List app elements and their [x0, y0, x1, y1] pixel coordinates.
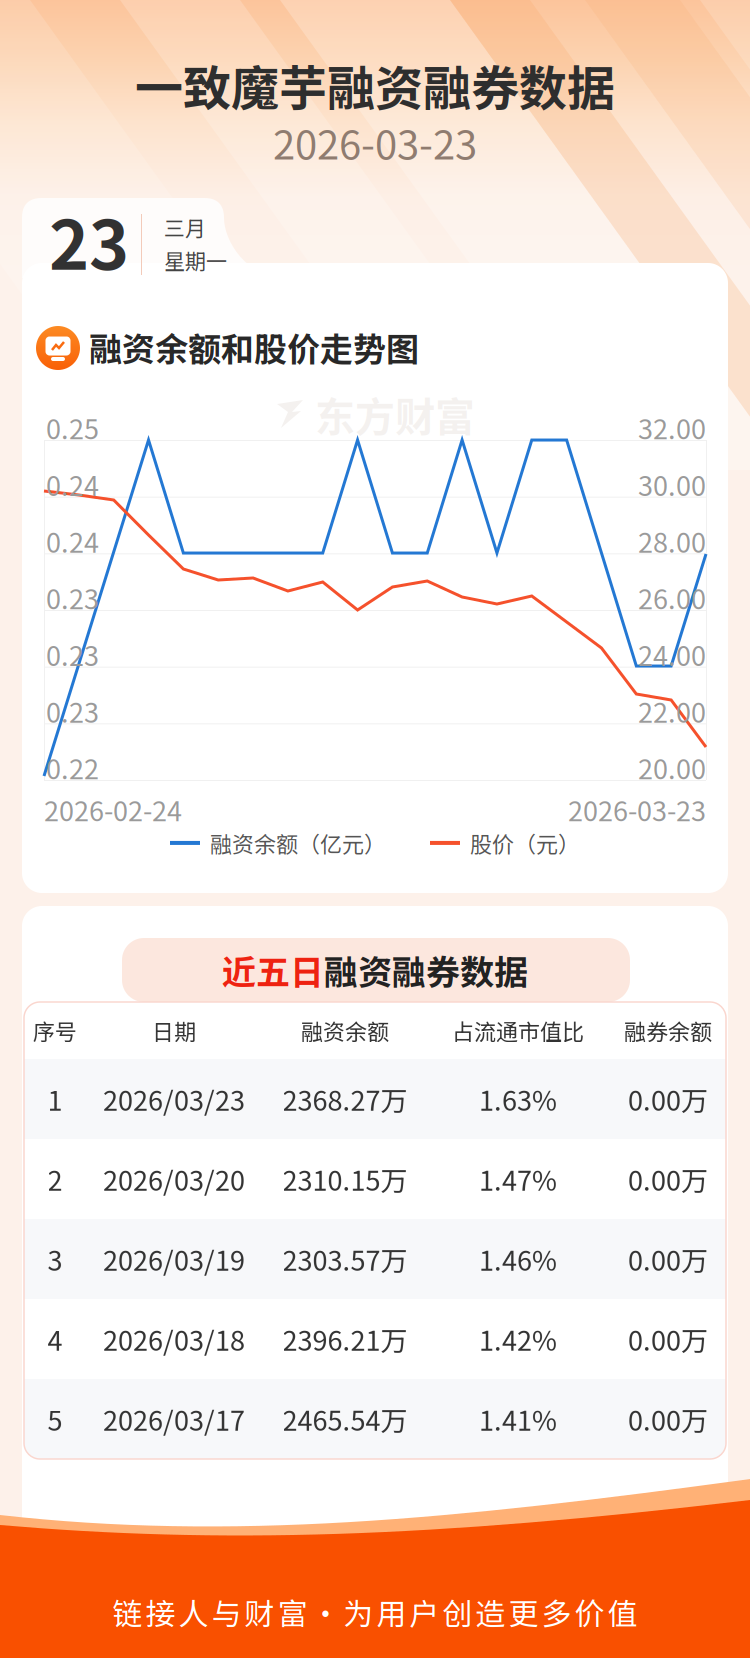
staticText: 日期: [152, 1015, 196, 1046]
staticText: 1.41%: [479, 1399, 557, 1439]
staticText: 0.23: [46, 578, 99, 617]
staticText: 28.00: [638, 521, 706, 560]
staticText: 0.00万: [628, 1399, 708, 1439]
staticText: 2368.27万: [282, 1079, 407, 1119]
staticText: 0.00万: [628, 1159, 708, 1199]
staticText: 32.00: [638, 408, 706, 447]
staticText: 30.00: [638, 465, 706, 504]
staticText: 24.00: [638, 635, 706, 674]
staticText: 2310.15万: [282, 1159, 407, 1199]
staticText: 22.00: [638, 691, 706, 730]
staticText: 4: [47, 1319, 62, 1359]
staticText: 近五日: [222, 945, 324, 995]
staticText: 1: [47, 1079, 62, 1119]
staticText: 融券余额: [624, 1015, 712, 1046]
staticText: 0.00万: [628, 1079, 708, 1119]
staticText: 20.00: [638, 748, 706, 787]
staticText: 0.24: [46, 465, 99, 504]
staticText: 东方财富: [315, 385, 475, 443]
staticText: 2026-02-24: [44, 790, 182, 829]
staticText: 3: [47, 1239, 62, 1279]
staticText: 占流通市值比: [452, 1015, 584, 1046]
staticText: 0.23: [46, 691, 99, 730]
staticText: 2026/03/20: [103, 1159, 245, 1199]
staticText: 23: [49, 191, 129, 289]
staticText: 0.25: [46, 408, 99, 447]
staticText: 0.22: [46, 748, 99, 787]
staticText: 2: [47, 1159, 62, 1199]
staticText: 2026/03/23: [103, 1079, 245, 1119]
staticText: 星期一: [164, 245, 227, 275]
staticText: 0.23: [46, 635, 99, 674]
staticText: 一致魔芋融资融券数据: [135, 50, 615, 120]
staticText: 0.00万: [628, 1239, 708, 1279]
staticText: 2026/03/17: [103, 1399, 245, 1439]
staticText: 链接人与财富·为用户创造更多价值: [112, 1590, 637, 1634]
staticText: 三月: [164, 212, 206, 242]
staticText: 0.00万: [628, 1319, 708, 1359]
staticText: 2026/03/18: [103, 1319, 245, 1359]
staticText: 1.46%: [479, 1239, 557, 1279]
staticText: 2026-03-23: [568, 790, 706, 829]
staticText: 2026/03/19: [103, 1239, 245, 1279]
staticText: 1.63%: [479, 1079, 557, 1119]
staticText: 序号: [33, 1015, 77, 1046]
staticText: 2026-03-23: [273, 113, 477, 171]
staticText: 融资余额: [301, 1015, 389, 1046]
staticText: 融资余额（亿元）: [210, 827, 386, 859]
staticText: 2465.54万: [282, 1399, 407, 1439]
staticText: 1.47%: [479, 1159, 557, 1199]
staticText: 2396.21万: [282, 1319, 407, 1359]
staticText: 2303.57万: [282, 1239, 407, 1279]
staticText: 1.42%: [479, 1319, 557, 1359]
staticText: 股价（元）: [470, 827, 580, 859]
staticText: 5: [47, 1399, 62, 1439]
staticText: 0.24: [46, 521, 99, 560]
staticText: 融资余额和股价走势图: [89, 323, 419, 371]
staticText: 融资融券数据: [324, 945, 528, 995]
staticText: 26.00: [638, 578, 706, 617]
